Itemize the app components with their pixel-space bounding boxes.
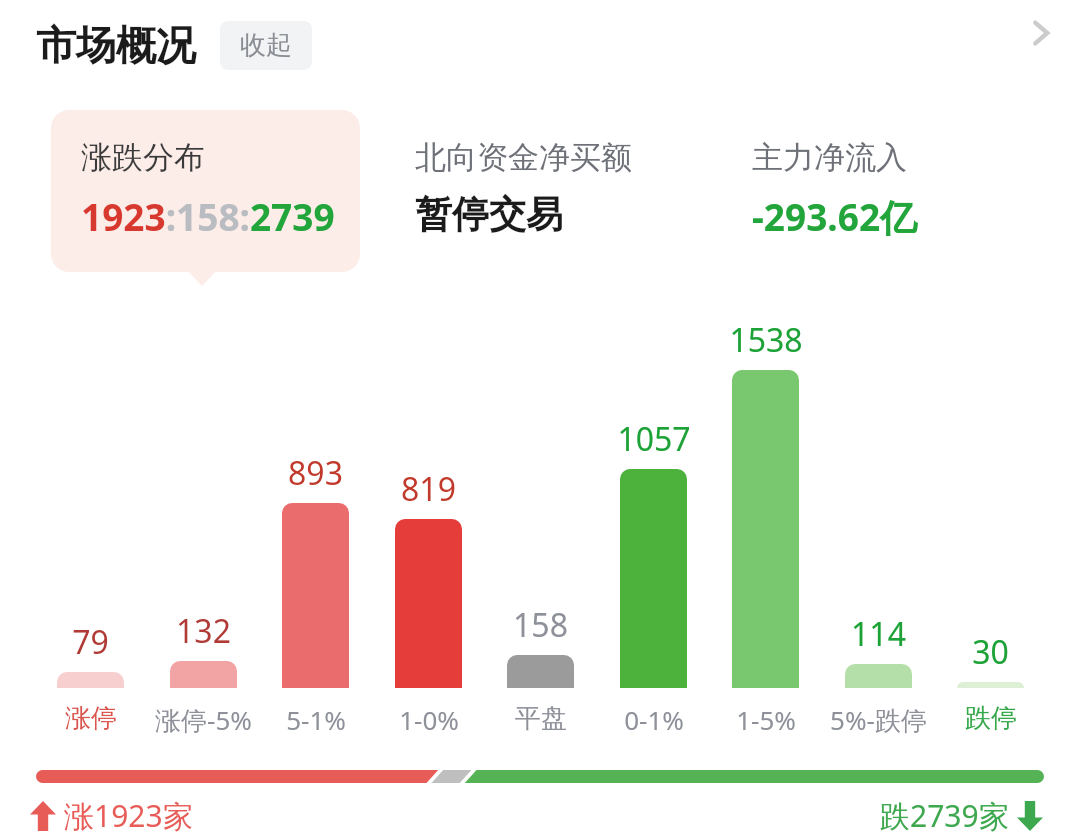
button[interactable]: 北向资金净买额 <box>385 110 696 272</box>
staticText: 30 <box>972 630 1009 674</box>
staticText: 暂停交易 <box>415 191 563 238</box>
button[interactable]: 涨1923家 <box>30 795 193 836</box>
button[interactable] <box>57 672 124 688</box>
button[interactable]: 主力净流入 <box>722 110 1033 272</box>
staticText: 79 <box>72 620 109 664</box>
staticText: 主力净流入 <box>752 138 907 177</box>
staticText: 1057 <box>617 417 691 461</box>
staticText: 涨1923家 <box>64 795 193 836</box>
staticText: 114 <box>851 612 906 656</box>
staticText: 涨跌分布 <box>81 138 205 177</box>
button[interactable] <box>845 664 912 688</box>
staticText: 1923:158:2739 <box>81 191 335 241</box>
button[interactable]: More <box>1018 10 1064 56</box>
staticText: 收起 <box>240 29 292 62</box>
button[interactable]: 涨跌分布 <box>51 110 360 272</box>
button[interactable] <box>170 661 237 688</box>
staticText: 158 <box>513 603 568 647</box>
staticText: 北向资金净买额 <box>415 138 632 177</box>
staticText: 1-5% <box>736 702 796 737</box>
staticText: 819 <box>401 467 456 511</box>
staticText: 跌2739家 <box>880 795 1009 836</box>
staticText: 1-0% <box>399 702 459 737</box>
button[interactable]: 收起 <box>220 21 312 70</box>
button[interactable] <box>282 503 349 688</box>
staticText: 1538 <box>729 318 803 362</box>
staticText: 平盘 <box>515 702 567 735</box>
button[interactable] <box>507 655 574 688</box>
staticText: 893 <box>288 451 343 495</box>
staticText: 涨停 <box>65 702 117 735</box>
staticText: -293.62亿 <box>752 191 918 242</box>
button[interactable] <box>620 469 687 688</box>
staticText: 132 <box>176 609 231 653</box>
button[interactable]: 跌2739家 <box>880 795 1043 836</box>
staticText: 5%-跌停 <box>830 702 927 738</box>
staticText: 跌停 <box>965 702 1017 735</box>
staticText: 0-1% <box>624 702 684 737</box>
button[interactable] <box>395 519 462 688</box>
button[interactable] <box>957 682 1024 688</box>
staticText: 涨停-5% <box>155 702 252 738</box>
button[interactable]: 市场概况 <box>30 16 318 74</box>
staticText: 市场概况 <box>36 20 196 70</box>
staticText: 5-1% <box>286 702 346 737</box>
button[interactable] <box>732 370 799 688</box>
